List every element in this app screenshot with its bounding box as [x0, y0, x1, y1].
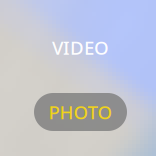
button[interactable]: PHOTO [34, 93, 127, 131]
staticText: VIDEO [52, 35, 109, 60]
button[interactable]: VIDEO [34, 33, 127, 62]
staticText: PHOTO [48, 100, 112, 124]
